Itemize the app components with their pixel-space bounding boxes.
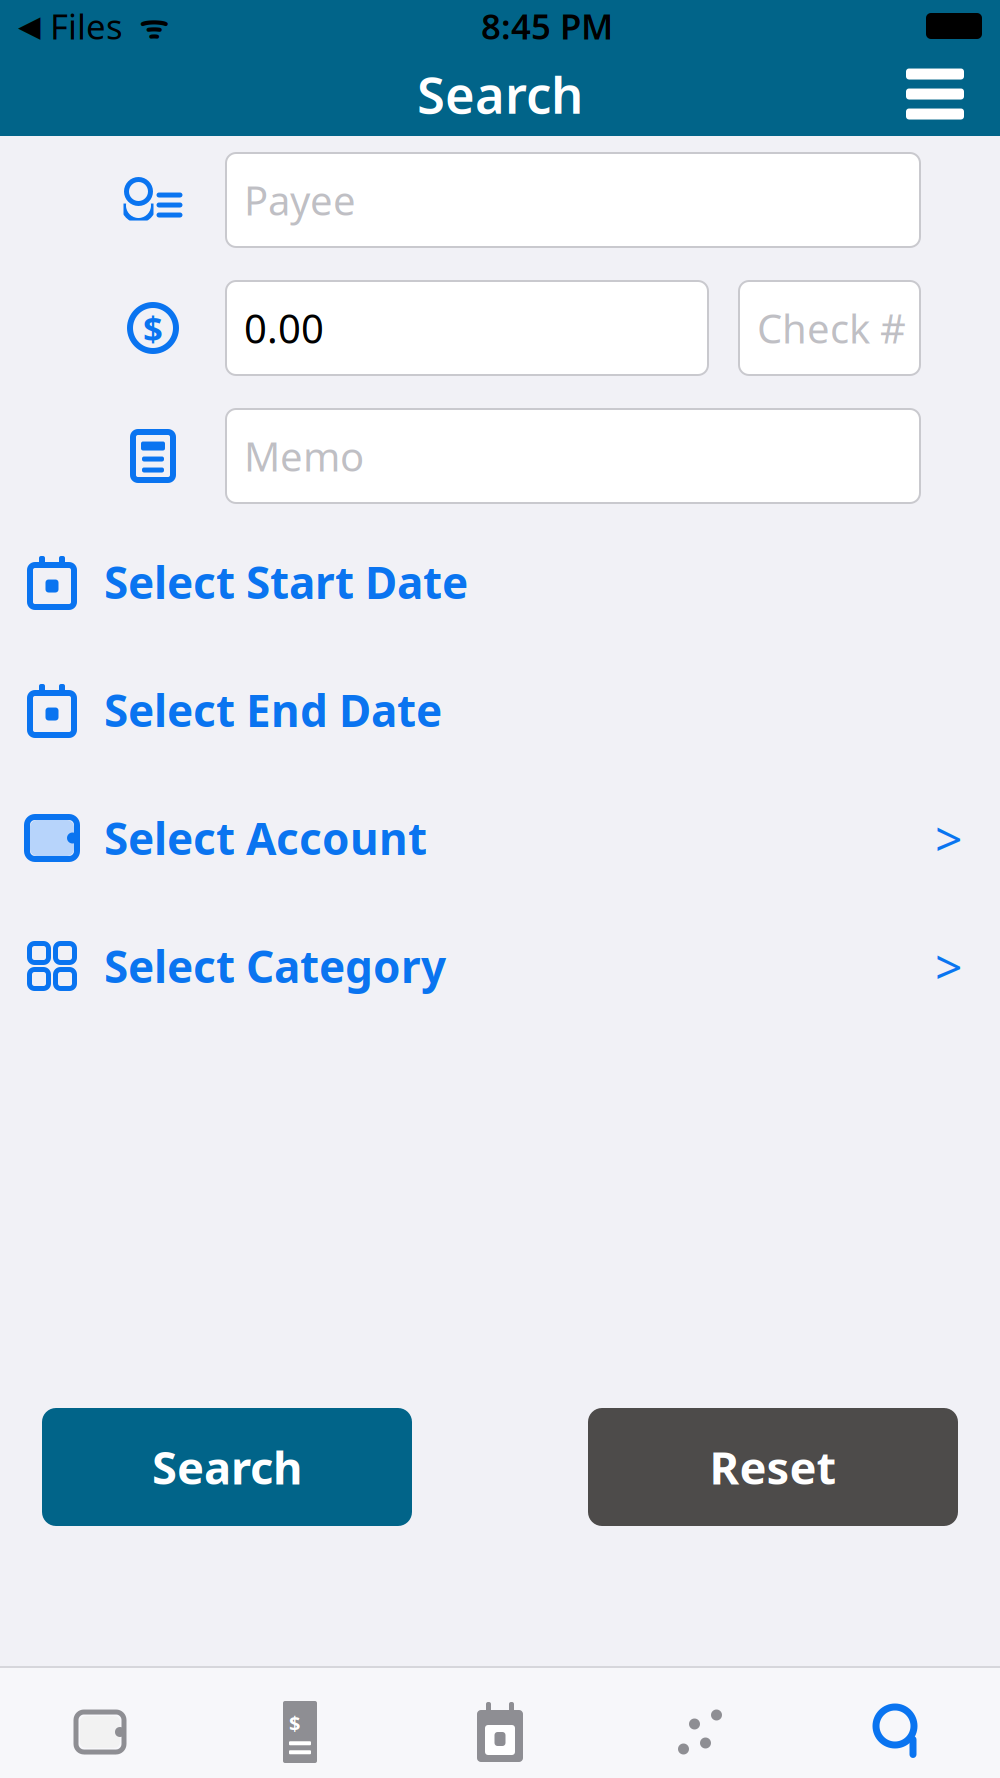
button[interactable]: Search (42, 1408, 412, 1526)
staticText: 8:45 PM (481, 3, 613, 49)
staticText: Select Account (104, 809, 427, 867)
staticText: $ (143, 305, 163, 351)
button[interactable]: Transactions (200, 1700, 400, 1764)
staticText: Reset (709, 1437, 836, 1497)
staticText: Files (41, 3, 123, 49)
button[interactable]: Select Account (0, 792, 1000, 884)
button[interactable]: Search (800, 1703, 1000, 1761)
staticText: Search (152, 1437, 302, 1497)
staticText: Search (417, 60, 583, 128)
staticText: $ (289, 1710, 300, 1736)
staticText: 0.00 (244, 301, 324, 354)
button[interactable]: Accounts (0, 1708, 200, 1756)
button[interactable]: Reset (588, 1408, 958, 1526)
staticText: > (935, 806, 962, 870)
staticText: Select Category (104, 937, 446, 995)
button[interactable]: Select End Date (0, 664, 1000, 756)
button[interactable]: Reports (600, 1704, 800, 1760)
staticText: ◀ (18, 9, 41, 43)
staticText: Select Start Date (104, 553, 468, 611)
staticText: Memo (244, 429, 364, 482)
button[interactable]: Calendar (400, 1700, 600, 1764)
button[interactable]: Select Category (0, 920, 1000, 1012)
staticText: Select End Date (104, 681, 442, 739)
staticText: ᯤ (123, 5, 168, 47)
staticText: > (935, 934, 962, 998)
button[interactable]: Select Start Date (0, 536, 1000, 628)
staticText: Check # (757, 301, 906, 354)
button[interactable]: Menu (892, 54, 978, 133)
staticText: Payee (244, 173, 356, 226)
